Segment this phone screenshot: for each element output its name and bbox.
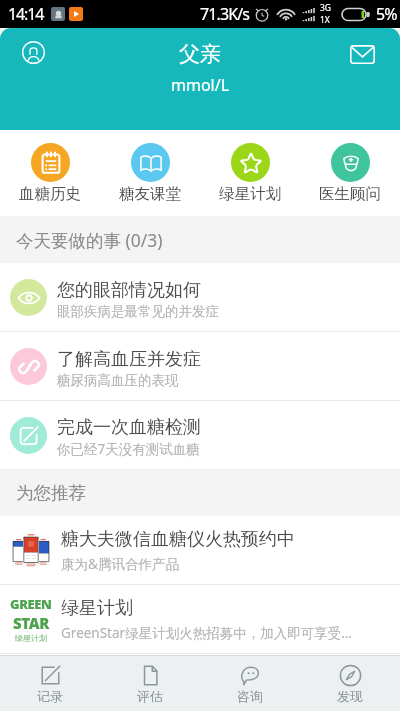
staticText: 完成一次血糖检测 bbox=[57, 416, 201, 439]
button[interactable]: 发现 bbox=[300, 656, 400, 711]
staticText: 了解高血压并发症 bbox=[57, 348, 201, 371]
button[interactable]: 咨询 bbox=[200, 656, 300, 711]
button[interactable]: GREEN bbox=[0, 585, 400, 653]
staticText: 糖友课堂 bbox=[119, 184, 181, 204]
button[interactable]: 记录 bbox=[0, 656, 100, 711]
staticText: 医生顾问 bbox=[319, 184, 381, 204]
staticText: 3G bbox=[320, 2, 332, 14]
staticText: 糖尿病高血压的表现 bbox=[57, 372, 179, 389]
staticText: 发现 bbox=[337, 688, 363, 704]
button[interactable]: 糖大夫微信血糖仪火热预约中 bbox=[0, 516, 400, 584]
button[interactable]: 了解高血压并发症 bbox=[0, 332, 400, 400]
staticText: GREEN bbox=[10, 595, 52, 613]
staticText: STAR bbox=[13, 613, 49, 633]
staticText: 咨询 bbox=[237, 688, 263, 704]
staticText: 您的眼部情况如何 bbox=[57, 279, 201, 302]
staticText: 你已经7天没有测试血糖 bbox=[57, 440, 200, 458]
button[interactable]: Messages bbox=[342, 34, 382, 74]
staticText: GreenStar绿星计划火热招募中，加入即可享受... bbox=[61, 624, 352, 642]
staticText: 评估 bbox=[137, 688, 163, 704]
staticText: 绿星计划 bbox=[61, 597, 133, 620]
button[interactable]: 评估 bbox=[100, 656, 200, 711]
staticText: 14:14 bbox=[8, 3, 44, 25]
button[interactable]: 血糖历史 bbox=[0, 130, 100, 216]
button[interactable]: 完成一次血糖检测 bbox=[0, 401, 400, 469]
staticText: 绿星计划 bbox=[219, 184, 281, 204]
staticText: 眼部疾病是最常见的并发症 bbox=[57, 303, 219, 320]
button[interactable]: Profile bbox=[13, 32, 53, 72]
staticText: 父亲 bbox=[179, 41, 221, 67]
staticText: 绿星计划 bbox=[15, 633, 47, 643]
staticText: 糖大夫微信血糖仪火热预约中 bbox=[61, 528, 295, 551]
staticText: 血糖历史 bbox=[19, 184, 81, 204]
staticText: 康为&腾讯合作产品 bbox=[61, 555, 179, 573]
staticText: 5% bbox=[376, 3, 397, 25]
staticText: 记录 bbox=[37, 688, 63, 704]
staticText: 71.3K/s bbox=[200, 3, 249, 25]
button[interactable]: 您的眼部情况如何 bbox=[0, 263, 400, 331]
staticText: 为您推荐 bbox=[16, 482, 86, 504]
staticText: mmol/L bbox=[171, 74, 230, 96]
button[interactable]: 糖友课堂 bbox=[100, 130, 200, 216]
button[interactable]: 绿星计划 bbox=[200, 130, 300, 216]
staticText: 今天要做的事 (0/3) bbox=[16, 228, 163, 252]
button[interactable]: 医生顾问 bbox=[300, 130, 400, 216]
staticText: 1X bbox=[320, 14, 330, 26]
